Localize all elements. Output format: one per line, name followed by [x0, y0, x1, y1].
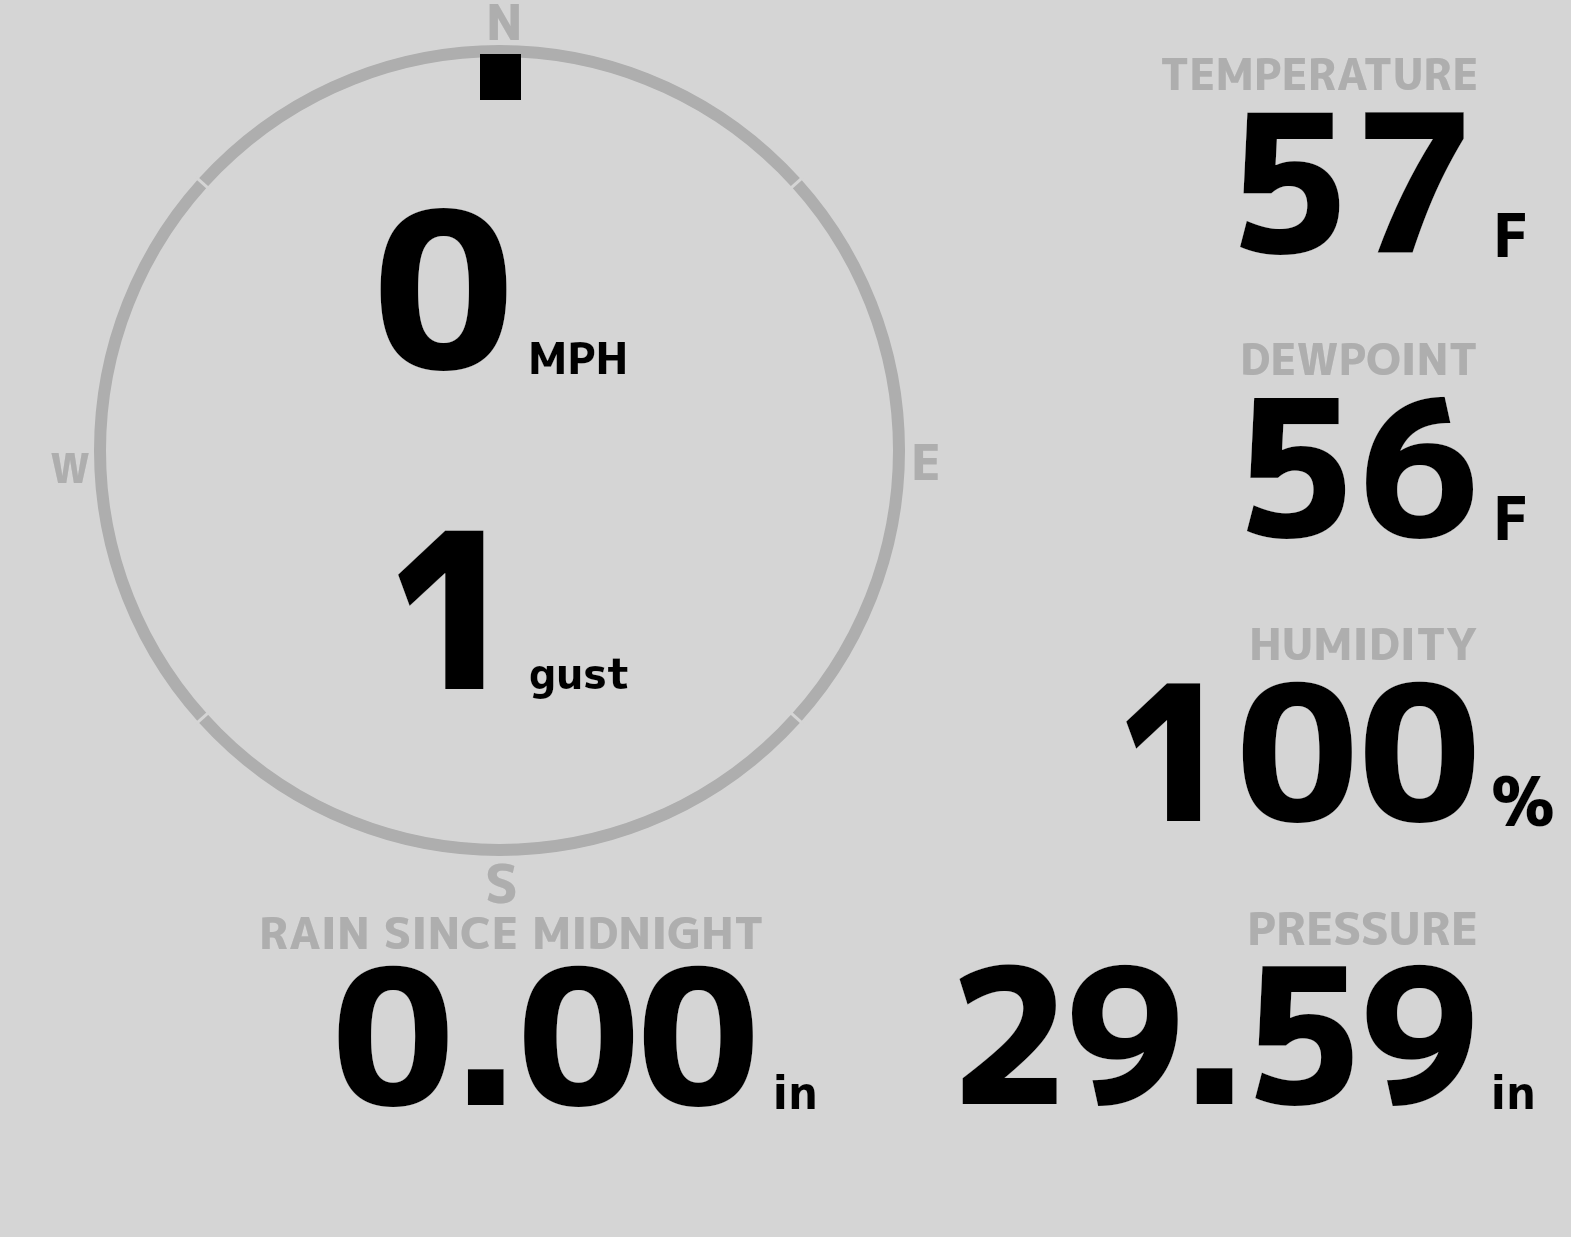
staticText: 0: [373, 136, 515, 439]
staticText: W: [50, 439, 91, 496]
staticText: 0.00: [332, 903, 758, 1165]
button[interactable]: Rain since midnight 0.00 inches: [230, 880, 850, 1130]
button[interactable]: Temperature 57 degrees Fahrenheit: [940, 30, 1560, 280]
staticText: N: [486, 0, 523, 55]
staticText: E: [911, 427, 941, 495]
staticText: 56: [1234, 333, 1482, 598]
staticText: F: [1493, 192, 1529, 276]
button[interactable]: Wind direction compass, north: [94, 45, 905, 856]
staticText: PRESSURE: [1247, 897, 1479, 960]
staticText: 57: [1227, 47, 1477, 315]
staticText: in: [772, 1058, 818, 1124]
button[interactable]: Humidity 100 percent: [940, 595, 1560, 845]
staticText: HUMIDITY: [1249, 613, 1478, 674]
staticText: MPH: [528, 327, 629, 388]
staticText: 100: [1114, 619, 1481, 881]
staticText: 29.59: [948, 902, 1475, 1164]
button[interactable]: Dewpoint 56 degrees Fahrenheit: [940, 310, 1560, 560]
staticText: gust: [529, 642, 631, 703]
button[interactable]: Pressure 29.59 inches: [920, 880, 1560, 1130]
staticText: %: [1491, 753, 1555, 848]
staticText: 1: [384, 456, 526, 759]
staticText: S: [485, 847, 518, 920]
staticText: F: [1493, 475, 1529, 559]
staticText: in: [1490, 1058, 1536, 1124]
staticText: DEWPOINT: [1240, 329, 1478, 389]
staticText: RAIN SINCE MIDNIGHT: [259, 902, 764, 963]
staticText: TEMPERATURE: [1160, 44, 1479, 104]
